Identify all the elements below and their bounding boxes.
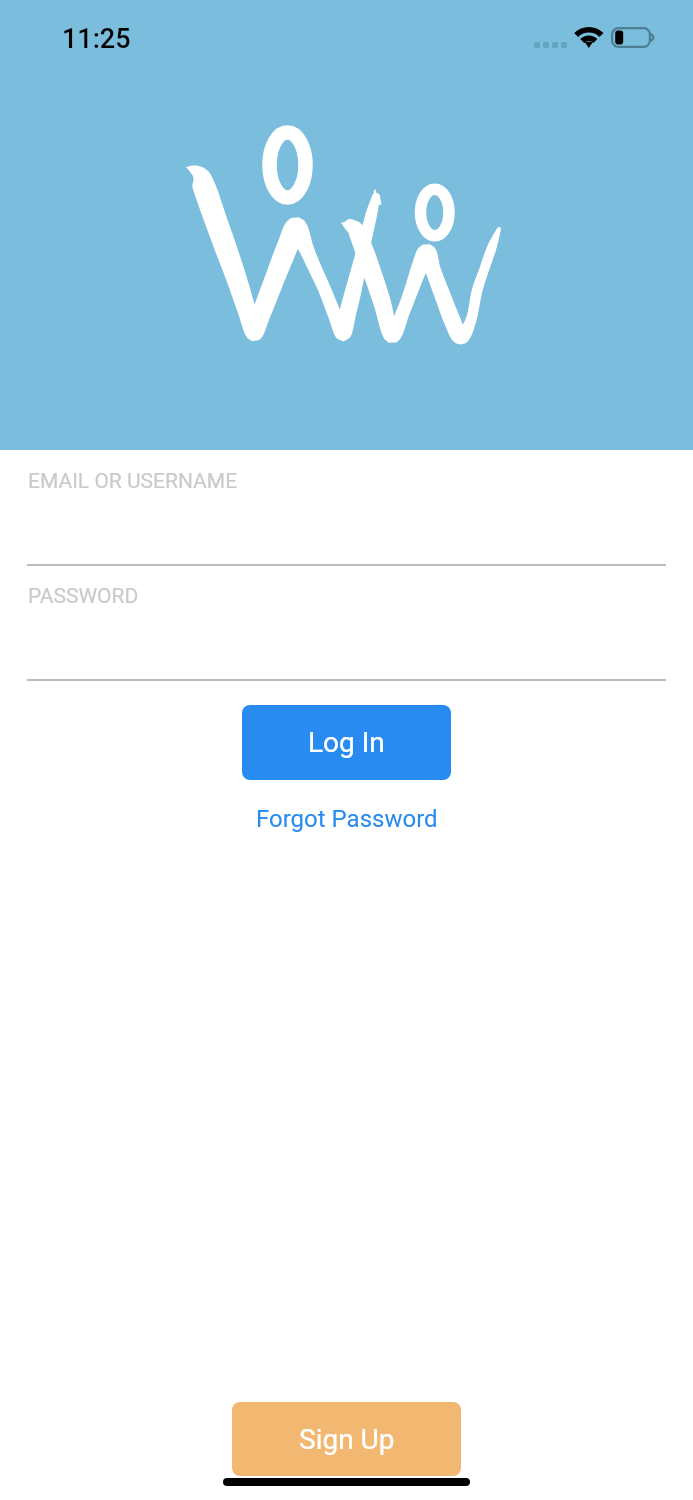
other: Wi-Fi — [573, 24, 605, 50]
staticText: EMAIL OR USERNAME — [28, 469, 238, 494]
staticText: Sign Up — [299, 1423, 395, 1456]
staticText: Forgot Password — [256, 805, 438, 833]
staticText: PASSWORD — [28, 584, 139, 609]
button[interactable]: Sign Up — [232, 1402, 461, 1476]
other: Battery — [611, 27, 657, 48]
staticText: 11:25 — [62, 23, 131, 55]
button[interactable]: Forgot Password — [237, 796, 456, 842]
staticText: Log In — [308, 726, 385, 759]
button[interactable]: Log In — [242, 705, 451, 780]
